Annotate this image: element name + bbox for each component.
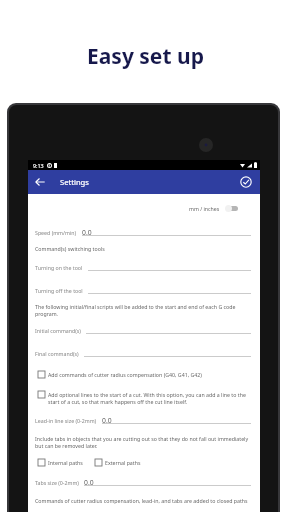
staticText: Speed (mm/min)	[35, 229, 77, 236]
staticText: The following initial/final scripts will…	[35, 303, 253, 317]
staticText: 0.0	[102, 416, 112, 425]
staticText: Turning off the tool	[35, 293, 83, 300]
button[interactable]: Back	[28, 170, 52, 194]
staticText: Turning on the tool	[35, 270, 83, 277]
staticText: 0.0	[84, 478, 94, 487]
button[interactable]: External paths	[95, 459, 141, 466]
staticText: Speed (mm/min)	[35, 228, 77, 235]
staticText: Commands of cutter radius compensation, …	[35, 497, 248, 504]
staticText: External paths	[105, 459, 141, 466]
staticText: Initial command(s)	[35, 333, 81, 340]
staticText: Add optional lines to the start of a cut…	[48, 391, 253, 405]
staticText: Initial command(s)	[35, 327, 81, 334]
staticText: Final command(s)	[35, 350, 79, 357]
staticText: Lead-in line size (0-2mm)	[35, 423, 97, 430]
staticText: Tabs size (0-2mm)	[35, 479, 79, 486]
staticText: Internal paths	[48, 459, 83, 466]
staticText: 9:13	[33, 162, 44, 169]
staticText: Tabs size (0-2mm)	[35, 485, 79, 492]
button[interactable]: Add optional lines to the start of a cut…	[38, 391, 253, 405]
button[interactable]: Internal paths	[38, 459, 83, 466]
button[interactable]: Add commands of cutter radius compensati…	[38, 371, 253, 378]
staticText: Add commands of cutter radius compensati…	[48, 371, 202, 378]
staticText: Settings	[60, 177, 89, 187]
staticText: Include tabs in objects that you are cut…	[35, 435, 253, 449]
staticText: mm / inches	[189, 205, 220, 212]
staticText: Easy set up	[87, 42, 204, 71]
staticText: Final command(s)	[35, 356, 79, 363]
staticText: Speed (mm/min)	[35, 235, 77, 242]
button[interactable]: Units toggle	[225, 203, 245, 214]
staticText: Turning off the tool	[35, 287, 83, 294]
staticText: Lead-in line size (0-2mm)	[35, 416, 97, 423]
staticText: Lead-in line size (0-2mm)	[35, 417, 97, 424]
button[interactable]: Done	[236, 172, 256, 192]
staticText: Command(s) switching tools	[35, 245, 105, 252]
staticText: Tabs size (0-2mm)	[35, 478, 79, 485]
staticText: Turning on the tool	[35, 264, 83, 271]
staticText: 0.0	[82, 228, 92, 237]
